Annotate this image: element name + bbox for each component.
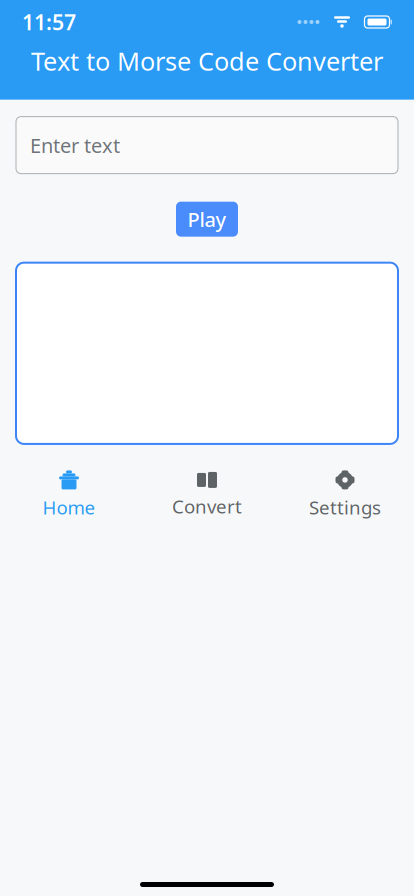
staticText: Text to Morse Code Converter: [31, 44, 383, 78]
staticText: Settings: [309, 495, 381, 520]
staticText: Enter text: [30, 132, 120, 158]
button[interactable]: Home: [0, 464, 138, 526]
staticText: Home: [42, 495, 95, 520]
staticText: 11:57: [22, 8, 76, 36]
button[interactable]: Convert: [138, 465, 276, 525]
staticText: Convert: [172, 494, 242, 519]
button[interactable]: Play: [176, 202, 238, 237]
button[interactable]: Settings: [276, 464, 414, 526]
staticText: Play: [187, 206, 226, 232]
